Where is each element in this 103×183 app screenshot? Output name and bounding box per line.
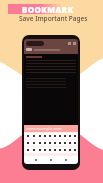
staticText: BOOKMARK [22, 4, 74, 15]
staticText: Save Important Pages [19, 14, 88, 23]
staticText: www.example.com [26, 126, 62, 131]
